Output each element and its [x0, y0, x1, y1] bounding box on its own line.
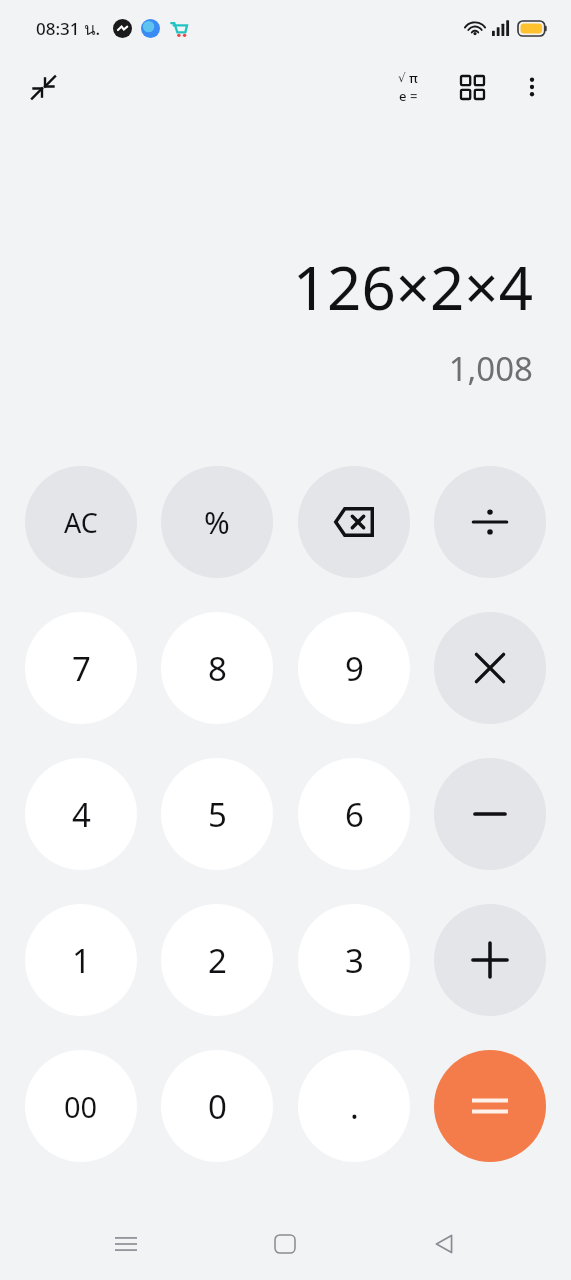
button[interactable]: 1 — [25, 904, 137, 1016]
button[interactable]: Unit converter — [445, 60, 499, 114]
button[interactable]: Equals — [434, 1050, 546, 1162]
staticText: 0 — [208, 1084, 227, 1129]
staticText: 6 — [345, 792, 364, 837]
button[interactable]: Scientific mode — [381, 60, 435, 114]
staticText: 00 — [64, 1087, 98, 1126]
staticText: 1,008 — [448, 346, 533, 391]
staticText: 2 — [208, 938, 227, 983]
staticText: AC — [64, 504, 98, 541]
staticText: 8 — [208, 646, 227, 691]
staticText: % — [204, 501, 230, 543]
button[interactable]: 2 — [161, 904, 273, 1016]
button[interactable]: Collapse — [18, 62, 68, 112]
button[interactable]: More options — [505, 60, 559, 114]
staticText: e — [399, 87, 407, 105]
button[interactable]: Backspace — [298, 466, 410, 578]
button[interactable]: 7 — [25, 612, 137, 724]
staticText: 9 — [345, 646, 364, 691]
staticText: 08:31 น. — [36, 15, 101, 42]
button[interactable]: Minus — [434, 758, 546, 870]
staticText: π — [409, 69, 418, 87]
staticText: 126×2×4 — [292, 246, 533, 328]
button[interactable]: Multiply — [434, 612, 546, 724]
button[interactable]: Recent apps — [94, 1212, 158, 1276]
staticText: = — [410, 87, 418, 105]
staticText: . — [350, 1084, 359, 1129]
staticText: √ — [398, 71, 406, 85]
button[interactable]: . — [298, 1050, 410, 1162]
button[interactable]: 3 — [298, 904, 410, 1016]
button[interactable]: 00 — [25, 1050, 137, 1162]
button[interactable]: Back — [412, 1212, 476, 1276]
button[interactable]: % — [161, 466, 273, 578]
staticText: 3 — [345, 938, 364, 983]
button[interactable]: 4 — [25, 758, 137, 870]
staticText: 7 — [72, 646, 91, 691]
button[interactable]: 5 — [161, 758, 273, 870]
button[interactable]: AC — [25, 466, 137, 578]
button[interactable]: Plus — [434, 904, 546, 1016]
button[interactable]: 8 — [161, 612, 273, 724]
button[interactable]: 6 — [298, 758, 410, 870]
button[interactable]: Divide — [434, 466, 546, 578]
staticText: 4 — [72, 792, 91, 837]
button[interactable]: Home — [253, 1212, 317, 1276]
button[interactable]: 9 — [298, 612, 410, 724]
staticText: 1 — [72, 938, 91, 983]
staticText: 5 — [208, 792, 227, 837]
button[interactable]: 0 — [161, 1050, 273, 1162]
